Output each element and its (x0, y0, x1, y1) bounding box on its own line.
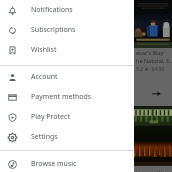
staticText: 3.2 ★ $4.99 (136, 66, 165, 73)
button[interactable]: See more (149, 86, 164, 101)
button[interactable]: Book cover (134, 0, 172, 48)
button[interactable]: Account (0, 67, 134, 87)
staticText: Account (31, 72, 58, 82)
staticText: he Natural, E… (136, 57, 172, 64)
button[interactable]: Movie cover (134, 106, 172, 166)
staticText: esar's Way: (136, 49, 165, 56)
staticText: Play Protect (31, 112, 70, 122)
staticText: Browse music (31, 159, 77, 169)
staticText: Subscriptions (31, 25, 76, 35)
button[interactable]: Payment methods (0, 87, 134, 107)
button[interactable]: Play Protect (0, 107, 134, 127)
button[interactable]: Wishlist (0, 40, 134, 60)
button[interactable]: Subscriptions (0, 20, 134, 40)
staticText: Payment methods (31, 92, 92, 102)
button[interactable]: Notifications (0, 0, 134, 20)
staticText: Settings (31, 132, 58, 142)
staticText: Notifications (31, 5, 73, 15)
button[interactable]: Browse music (0, 154, 134, 172)
staticText: Jurassic Wor… (136, 169, 171, 172)
button[interactable]: Settings (0, 127, 134, 147)
staticText: Wishlist (31, 45, 57, 55)
